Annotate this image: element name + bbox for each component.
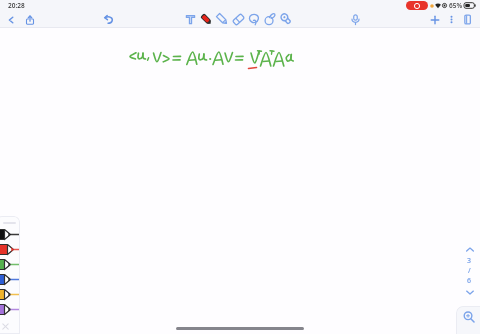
button[interactable]	[0, 216, 20, 334]
button[interactable]: Pages	[460, 12, 475, 27]
button[interactable]: Zoom	[456, 306, 480, 334]
button[interactable]: More	[444, 12, 459, 27]
button[interactable]: Add page	[427, 12, 442, 27]
staticText: 3	[467, 256, 472, 266]
button[interactable]: Text tool	[182, 11, 198, 27]
staticText: 20:28	[8, 1, 25, 10]
button[interactable]: Eraser	[230, 11, 246, 27]
button[interactable]: Lasso	[246, 11, 262, 27]
button[interactable]: Undo	[101, 12, 116, 27]
button[interactable]: Microphone	[348, 12, 363, 27]
staticText: 65%	[449, 1, 463, 10]
button[interactable]: Highlighter	[214, 11, 230, 27]
button[interactable]: Pen	[198, 11, 214, 27]
staticText: 6	[467, 276, 472, 286]
button[interactable]: Next page	[463, 286, 476, 299]
button[interactable]: Color	[278, 11, 294, 27]
button[interactable]: Share	[22, 12, 37, 27]
button[interactable]: Back	[3, 12, 18, 27]
button[interactable]: Previous page	[463, 243, 476, 256]
staticText: /	[468, 266, 471, 276]
button[interactable]: Shapes	[262, 11, 278, 27]
